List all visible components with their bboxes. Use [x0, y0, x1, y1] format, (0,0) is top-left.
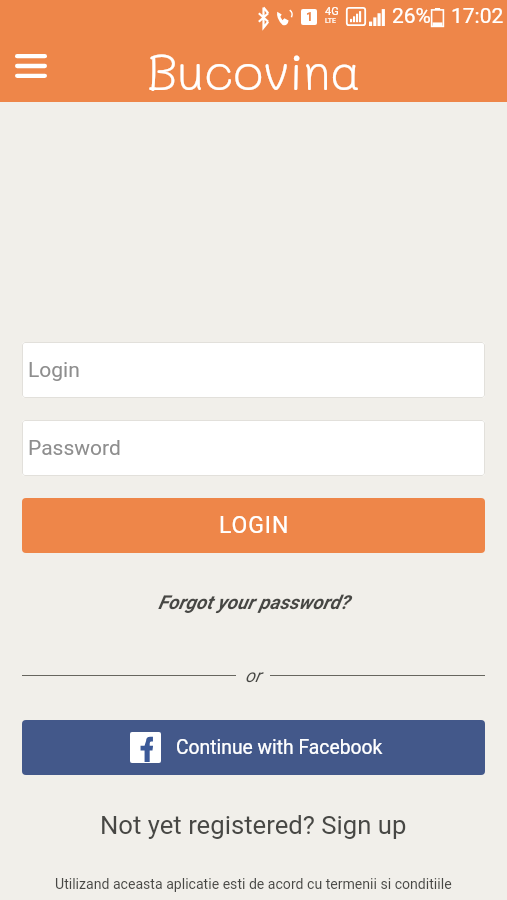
- staticText: Login: [28, 358, 80, 383]
- staticText: Forgot your password?: [158, 591, 350, 614]
- button[interactable]: LOGIN: [22, 498, 485, 553]
- button[interactable]: Open navigation menu: [8, 43, 54, 89]
- button[interactable]: Login: [22, 342, 485, 398]
- staticText: Password: [28, 436, 121, 461]
- button[interactable]: Password: [22, 420, 485, 476]
- staticText: or: [245, 665, 261, 686]
- staticText: 26%: [392, 4, 431, 29]
- staticText: 1: [306, 10, 313, 24]
- button[interactable]: Continue with Facebook: [22, 720, 485, 775]
- staticText: Not yet registered? Sign up: [100, 810, 407, 840]
- staticText: 17:02: [451, 4, 504, 29]
- staticText: LTE: [325, 17, 336, 25]
- staticText: Continue with Facebook: [176, 736, 383, 759]
- staticText: 4G: [325, 5, 339, 18]
- staticText: LOGIN: [219, 512, 290, 539]
- staticText: Bucovina: [147, 38, 361, 100]
- staticText: Utilizand aceasta aplicatie esti de acor…: [55, 876, 452, 893]
